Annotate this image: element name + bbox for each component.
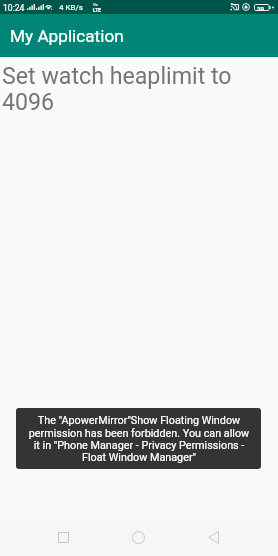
staticText: 10:24 — [3, 3, 25, 13]
staticText: Set watch heaplimit to 4096 — [2, 62, 242, 116]
button[interactable]: Recent apps — [45, 519, 82, 556]
staticText: 39 — [257, 5, 265, 12]
staticText: LTE — [93, 7, 102, 13]
button[interactable]: Back — [195, 519, 232, 556]
button[interactable]: Home — [120, 519, 157, 556]
staticText: 4 KB/s — [59, 3, 83, 12]
staticText: The "ApowerMirror"Show Floating Window p… — [27, 414, 251, 463]
staticText: Vo — [93, 2, 98, 7]
staticText: My Application — [10, 26, 124, 46]
